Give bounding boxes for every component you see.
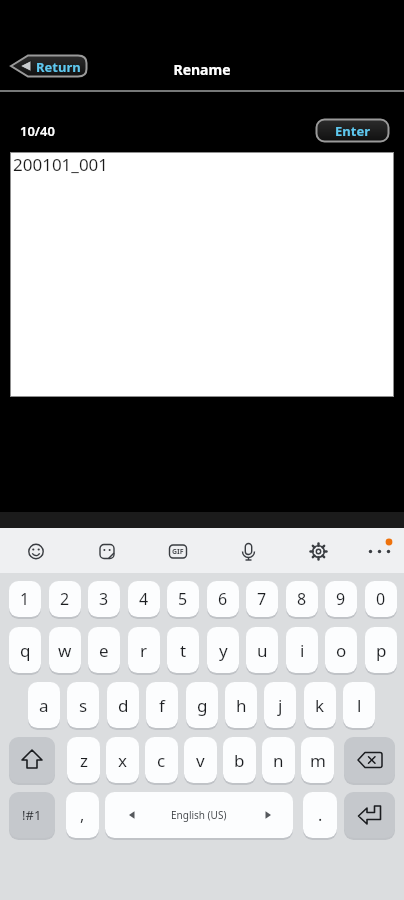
staticText: , <box>80 804 85 826</box>
staticText: i <box>300 639 305 662</box>
staticText: Return <box>36 58 81 76</box>
button[interactable]: p <box>365 627 397 673</box>
staticText: 5 <box>178 588 188 610</box>
staticText: l <box>357 694 362 717</box>
button[interactable]: k <box>304 682 336 728</box>
staticText: 9 <box>336 588 346 610</box>
staticText: o <box>336 639 347 662</box>
button[interactable]: j <box>264 682 296 728</box>
staticText: p <box>376 639 387 662</box>
button[interactable]: x <box>106 737 139 783</box>
staticText: g <box>197 694 208 717</box>
staticText: f <box>159 694 165 717</box>
button[interactable]: t <box>167 627 199 673</box>
button[interactable]: z <box>67 737 100 783</box>
button[interactable]: h <box>225 682 257 728</box>
button[interactable]: g <box>186 682 218 728</box>
button[interactable] <box>344 737 395 783</box>
staticText: Rename <box>0 60 404 79</box>
staticText: 200101_001 <box>13 153 109 176</box>
staticText: n <box>273 749 284 772</box>
staticText: e <box>99 639 109 662</box>
staticText: 1 <box>20 588 30 610</box>
staticText: 10/40 <box>20 122 55 140</box>
button[interactable]: 9 <box>325 581 357 617</box>
staticText: . <box>318 804 323 826</box>
staticText: 7 <box>257 588 267 610</box>
staticText: z <box>80 749 88 772</box>
button[interactable]: e <box>88 627 120 673</box>
button[interactable]: 5 <box>167 581 199 617</box>
staticText: w <box>58 639 72 662</box>
button[interactable]: 7 <box>246 581 278 617</box>
button[interactable]: o <box>325 627 357 673</box>
staticText: s <box>79 694 88 717</box>
staticText: 4 <box>139 588 149 610</box>
button[interactable]: 3 <box>88 581 120 617</box>
staticText: t <box>180 639 187 662</box>
button[interactable]: n <box>262 737 295 783</box>
staticText: 3 <box>99 588 109 610</box>
button[interactable]: u <box>246 627 278 673</box>
button[interactable] <box>344 792 395 838</box>
button[interactable]: s <box>67 682 99 728</box>
button[interactable]: 6 <box>207 581 239 617</box>
staticText: 2 <box>60 588 70 610</box>
staticText: j <box>278 694 283 717</box>
button[interactable]: w <box>49 627 81 673</box>
button[interactable]: 200101_001 <box>10 152 394 397</box>
staticText: English (US) <box>171 808 227 822</box>
button[interactable]: b <box>223 737 256 783</box>
button[interactable]: 2 <box>49 581 81 617</box>
button[interactable]: 8 <box>286 581 318 617</box>
staticText: !#1 <box>22 806 42 824</box>
staticText: y <box>219 639 228 662</box>
button[interactable]: . <box>303 792 337 838</box>
button[interactable]: v <box>184 737 217 783</box>
button[interactable] <box>9 737 55 783</box>
button[interactable]: 0 <box>365 581 397 617</box>
staticText: v <box>196 749 205 772</box>
staticText: c <box>157 749 166 772</box>
button[interactable]: l <box>343 682 375 728</box>
button[interactable]: c <box>145 737 178 783</box>
staticText: k <box>315 694 325 717</box>
staticText: d <box>118 694 129 717</box>
staticText: a <box>39 694 49 717</box>
button[interactable]: a <box>28 682 60 728</box>
button[interactable]: f <box>146 682 178 728</box>
staticText: 6 <box>218 588 228 610</box>
button[interactable]: !#1 <box>9 792 55 838</box>
staticText: 0 <box>376 588 386 610</box>
staticText: m <box>310 749 326 772</box>
button[interactable]: 4 <box>128 581 160 617</box>
button[interactable]: Return <box>9 54 88 78</box>
staticText: x <box>118 749 127 772</box>
button[interactable]: , <box>66 792 99 838</box>
staticText: u <box>257 639 268 662</box>
staticText: 8 <box>297 588 307 610</box>
staticText: Enter <box>315 122 390 143</box>
staticText: GIF <box>172 547 184 557</box>
button[interactable]: y <box>207 627 239 673</box>
button[interactable]: d <box>107 682 139 728</box>
staticText: q <box>20 639 31 662</box>
staticText: b <box>234 749 245 772</box>
button[interactable]: Enter <box>315 118 390 143</box>
button[interactable]: r <box>128 627 160 673</box>
staticText: r <box>140 639 148 662</box>
button[interactable]: q <box>9 627 41 673</box>
button[interactable]: English (US) <box>105 792 293 838</box>
button[interactable]: i <box>286 627 318 673</box>
button[interactable]: 1 <box>9 581 41 617</box>
staticText: h <box>236 694 247 717</box>
button[interactable]: m <box>301 737 334 783</box>
